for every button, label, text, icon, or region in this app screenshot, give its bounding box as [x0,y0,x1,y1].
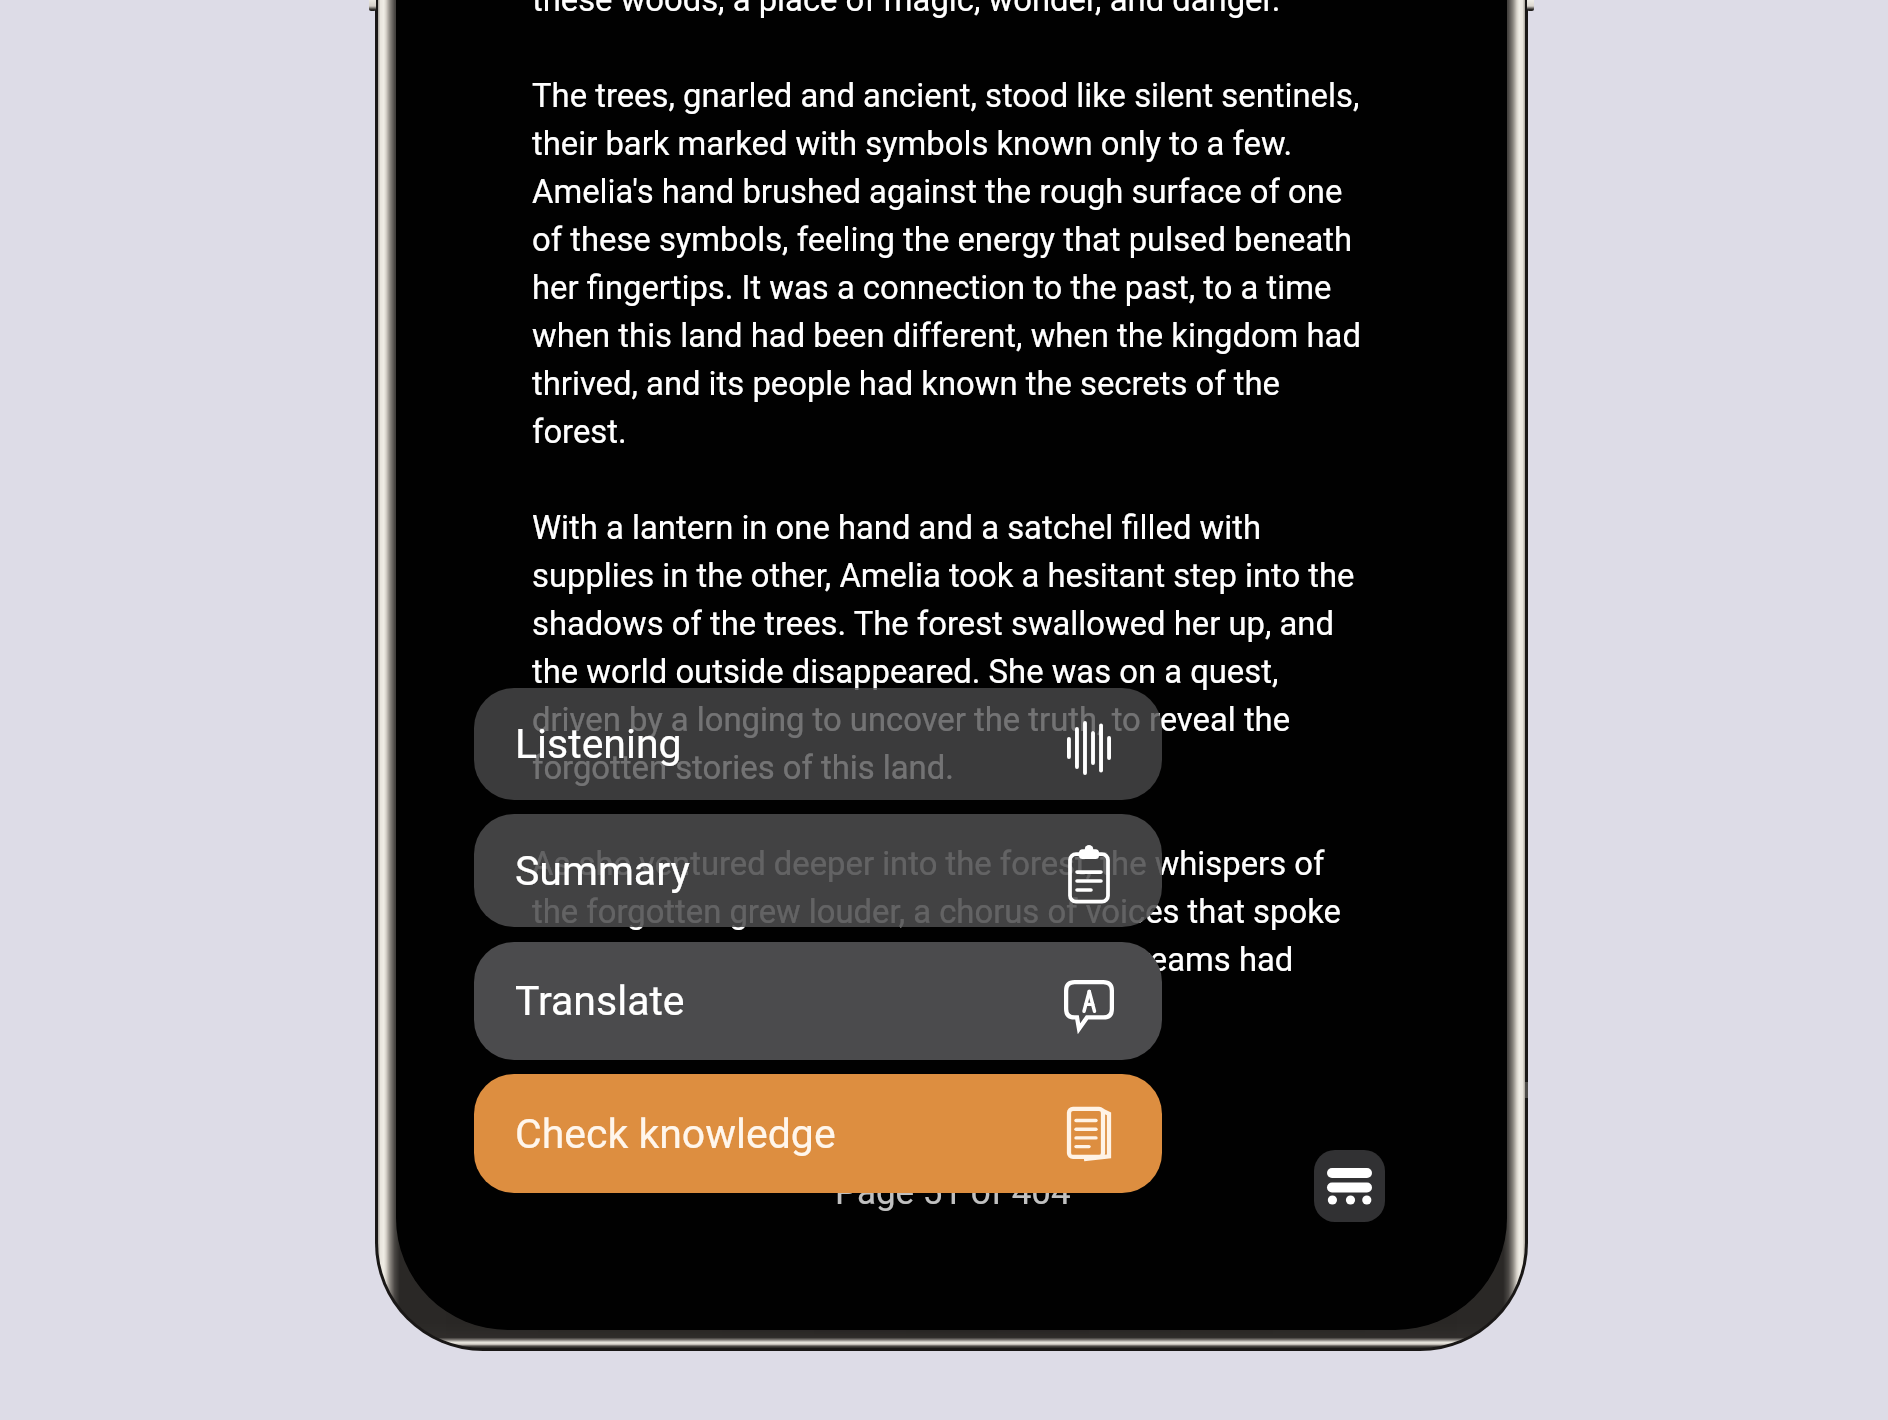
button[interactable]: Check knowledge [474,1074,1162,1193]
staticText: As she ventured deeper into the forest, … [532,837,1341,981]
staticText: Check knowledge [515,1110,836,1158]
staticText: Translate [515,977,685,1025]
button[interactable]: Display options [1314,1150,1385,1222]
button[interactable]: Listening [474,688,1162,800]
button[interactable]: Translate [474,942,1162,1060]
staticText: Summary [515,847,690,895]
staticText: The trees, gnarled and ancient, stood li… [532,69,1361,453]
staticText: Listening [515,720,682,768]
staticText: With a lantern in one hand and a satchel… [532,501,1355,789]
button[interactable]: Summary [474,814,1162,927]
staticText: Page 51 of 404 [835,1172,1071,1213]
staticText: these woods, a place of magic, wonder, a… [532,0,1281,21]
